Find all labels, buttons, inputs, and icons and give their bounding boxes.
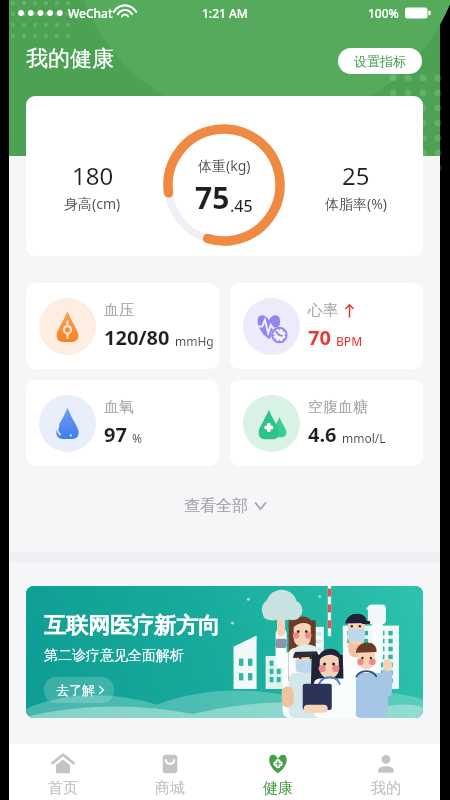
staticText: 我的 <box>371 779 401 798</box>
staticText: 身高(cm) <box>64 194 121 213</box>
button[interactable]: 互联网医疗新方向 <box>26 586 423 718</box>
staticText: % <box>132 430 142 446</box>
staticText: 空腹血糖 <box>308 398 368 417</box>
staticText: BPM <box>336 333 363 349</box>
staticText: 我的健康 <box>26 45 114 73</box>
staticText: 血氧 <box>104 398 134 417</box>
staticText: 75 <box>195 177 230 218</box>
staticText: 120/80 <box>104 324 170 351</box>
staticText: 体重(kg) <box>198 156 251 175</box>
staticText: 健康 <box>263 779 293 798</box>
button[interactable]: 心率 <box>230 283 423 369</box>
staticText: 去了解 <box>56 682 95 698</box>
staticText: 体脂率(%) <box>325 194 388 213</box>
staticText: 97 <box>104 421 127 448</box>
staticText: mmHg <box>175 333 214 349</box>
staticText: mmol/L <box>342 430 386 446</box>
button[interactable]: 商城 <box>116 744 224 800</box>
staticText: 设置指标 <box>354 53 406 69</box>
button[interactable]: 设置指标 <box>338 48 422 74</box>
button[interactable]: 查看全部 <box>174 493 276 519</box>
staticText: 4.6 <box>308 421 337 448</box>
staticText: 血压 <box>104 301 134 320</box>
staticText: 100% <box>368 5 399 21</box>
button[interactable]: 血压 <box>26 283 219 369</box>
staticText: 180 <box>72 159 114 192</box>
button[interactable]: 首页 <box>9 744 116 800</box>
staticText: 心率 <box>308 301 338 320</box>
button[interactable]: 我的 <box>332 744 440 800</box>
staticText: WeChat <box>68 5 113 21</box>
staticText: 1:21 AM <box>202 5 248 21</box>
staticText: 25 <box>342 159 370 192</box>
staticText: 第二诊疗意见全面解析 <box>44 647 184 665</box>
button[interactable]: 空腹血糖 <box>230 380 423 466</box>
button[interactable]: 去了解 <box>44 677 114 703</box>
button[interactable]: 血氧 <box>26 380 219 466</box>
staticText: 首页 <box>48 779 78 798</box>
staticText: 互联网医疗新方向 <box>44 612 220 640</box>
staticText: .45 <box>230 195 253 217</box>
staticText: 商城 <box>155 779 185 798</box>
staticText: 70 <box>308 324 331 351</box>
button[interactable]: 健康 <box>224 744 332 800</box>
staticText: 查看全部 <box>184 496 248 516</box>
